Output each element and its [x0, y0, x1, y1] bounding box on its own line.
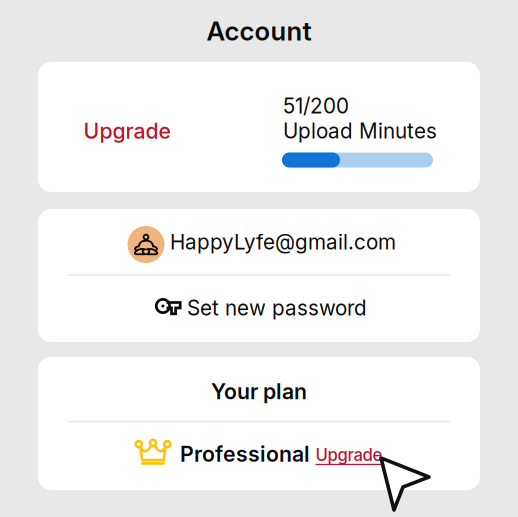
staticText: Account	[206, 15, 311, 47]
button[interactable]: Set new password	[38, 275, 480, 342]
button[interactable]: HappyLyfe@gmail.com	[38, 209, 480, 275]
staticText: Your plan	[211, 379, 307, 404]
staticText: Professional	[180, 441, 310, 467]
staticText: Upgrade	[315, 445, 382, 465]
staticText: 51/200	[283, 93, 349, 118]
button[interactable]: Upgrade	[67, 114, 187, 148]
staticText: Set new password	[187, 295, 367, 320]
staticText: Upload Minutes	[283, 118, 437, 143]
button[interactable]: Upgrade	[308, 438, 389, 472]
staticText: Upgrade	[83, 118, 170, 144]
staticText: HappyLyfe@gmail.com	[170, 229, 396, 254]
